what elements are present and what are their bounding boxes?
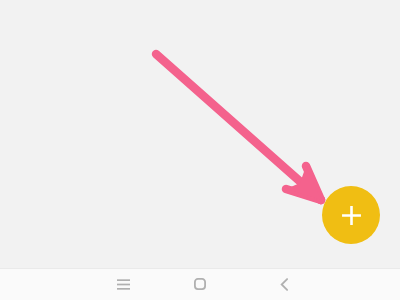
button[interactable]: Home — [177, 268, 223, 300]
button[interactable]: Add — [322, 186, 380, 244]
button[interactable]: Recents — [100, 268, 146, 300]
button[interactable]: Back — [261, 268, 307, 300]
